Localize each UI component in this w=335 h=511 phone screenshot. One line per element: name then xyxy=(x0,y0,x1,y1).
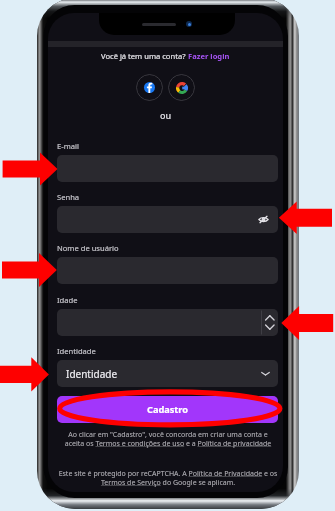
staticText: Identidade xyxy=(57,346,96,356)
staticText: Ao clicar em "Cadastro", você concorda e… xyxy=(61,430,275,448)
button[interactable]: Mostrar senha xyxy=(57,206,278,233)
button[interactable]: Mostrar senha xyxy=(258,215,269,224)
button[interactable]: Identidade xyxy=(57,360,278,387)
staticText: Você já tem uma conta? xyxy=(101,51,188,61)
staticText: E-mail xyxy=(57,141,79,151)
staticText: Cadastro xyxy=(147,403,188,416)
button[interactable]: Cadastro xyxy=(57,396,278,423)
staticText: Idade xyxy=(57,295,78,305)
button[interactable]: Alterar idade xyxy=(57,309,278,336)
button[interactable]: Fazer login xyxy=(188,51,230,61)
button[interactable]: Entrar com Facebook xyxy=(136,74,163,101)
other: Alterar idade xyxy=(261,309,278,336)
staticText: ou xyxy=(48,109,283,121)
button[interactable]: Entrar com Google xyxy=(168,74,195,101)
staticText: Este site é protegido por reCAPTCHA. A P… xyxy=(57,469,279,487)
staticText: Identidade xyxy=(66,367,118,381)
staticText: Nome de usuário xyxy=(57,243,119,253)
staticText: Senha xyxy=(57,192,80,202)
